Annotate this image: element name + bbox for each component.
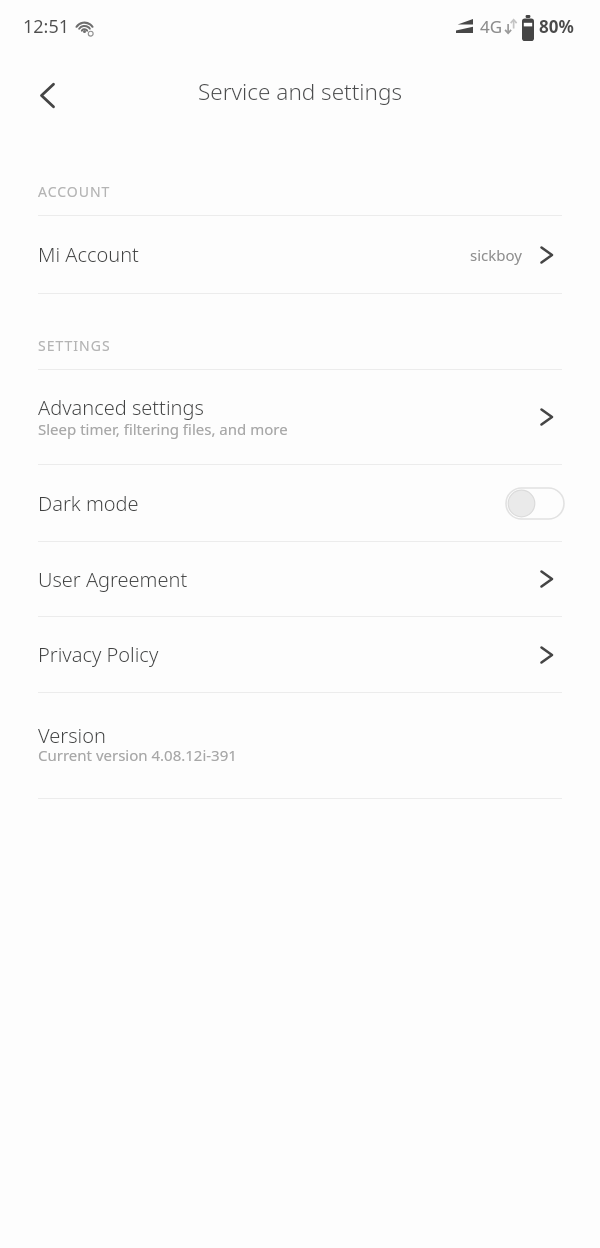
button[interactable]: Privacy Policy [0, 617, 600, 692]
button[interactable] [30, 78, 64, 112]
staticText: ACCOUNT [38, 182, 111, 201]
staticText: Mi Account [38, 241, 139, 268]
staticText: sickboy [470, 245, 522, 265]
staticText: Version [38, 722, 106, 749]
staticText: Sleep timer, filtering files, and more [38, 419, 288, 439]
staticText: Service and settings [198, 76, 402, 107]
staticText: Current version 4.08.12i-391 [38, 745, 237, 765]
button[interactable]: Advanced settings [0, 370, 600, 464]
staticText: 12:51 [23, 14, 70, 39]
staticText: 4G [480, 15, 503, 38]
button[interactable]: Mi Account [0, 216, 600, 293]
staticText: Advanced settings [38, 394, 204, 421]
button[interactable]: Dark mode [0, 465, 600, 541]
staticText: 80% [539, 15, 574, 38]
staticText: User Agreement [38, 566, 188, 593]
staticText: SETTINGS [38, 336, 111, 355]
staticText: Privacy Policy [38, 641, 159, 668]
button[interactable]: User Agreement [0, 542, 600, 616]
staticText: Dark mode [38, 490, 139, 517]
